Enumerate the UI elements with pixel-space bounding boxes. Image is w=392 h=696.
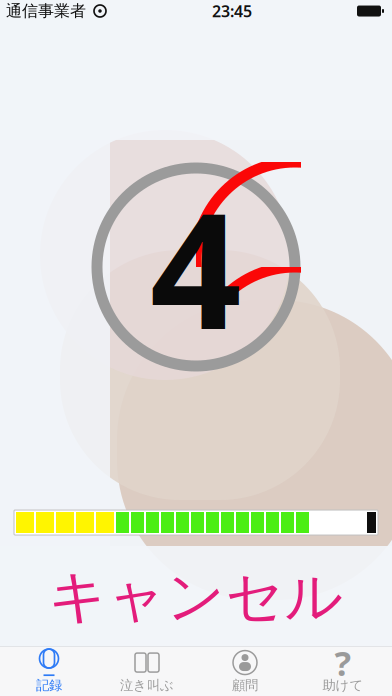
button[interactable]: 記録	[0, 647, 98, 696]
staticText: 通信事業者	[6, 1, 86, 21]
button[interactable]: キャンセル	[0, 570, 392, 624]
staticText: ?	[334, 639, 351, 685]
staticText: 顧問	[232, 677, 258, 693]
button[interactable]: ?	[294, 647, 392, 696]
staticText: 4	[150, 161, 242, 373]
staticText: 23:45	[212, 0, 252, 22]
button[interactable]: 泣き叫ぶ	[98, 647, 196, 696]
staticText: 助けて	[322, 677, 363, 693]
button[interactable]: 顧問	[196, 647, 294, 696]
staticText: キャンセル	[48, 562, 343, 632]
staticText: 記録	[36, 677, 62, 693]
staticText: 泣き叫ぶ	[120, 677, 174, 693]
